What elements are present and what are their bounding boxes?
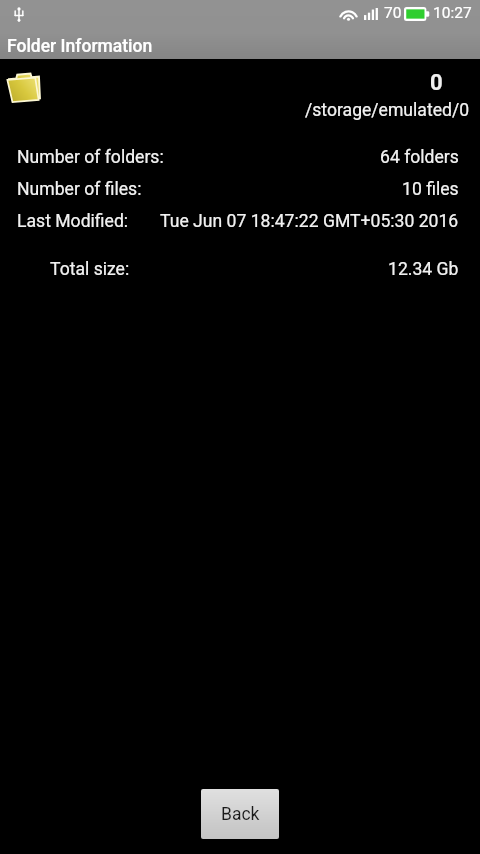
other: Battery	[404, 7, 430, 21]
other: Signal strength	[364, 8, 378, 20]
other: Wi-Fi	[339, 5, 358, 21]
staticText: Number of folders:	[17, 147, 164, 168]
staticText: 0	[430, 70, 443, 96]
staticText: 12.34 Gb	[388, 259, 459, 280]
other: USB connected	[13, 7, 25, 21]
staticText: /storage/emulated/0	[305, 100, 470, 121]
staticText: Tue Jun 07 18:47:22 GMT+05:30 2016	[160, 211, 459, 232]
staticText: Total size:	[50, 259, 130, 280]
staticText: Back	[221, 804, 260, 825]
staticText: 64 folders	[380, 147, 459, 168]
staticText: Folder Information	[7, 36, 153, 57]
button[interactable]: Back	[201, 789, 279, 839]
staticText: 70	[384, 4, 402, 22]
staticText: Last Modified:	[17, 211, 129, 232]
staticText: Number of files:	[17, 179, 142, 200]
staticText: 10:27	[433, 4, 472, 22]
staticText: 10 files	[402, 179, 459, 200]
